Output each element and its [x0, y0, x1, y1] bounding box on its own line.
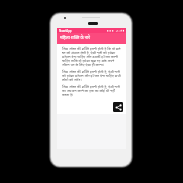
staticText: जिस ओरत की शक्ति इतनी होती है, ऐसी नारी … [62, 69, 122, 82]
staticText: जिस ओरत की शक्ति इतनी होती है, ऐसी नारी … [62, 84, 122, 97]
staticText: NaariApp [59, 29, 72, 33]
staticText: महिला शक्ति के नारे [60, 35, 90, 41]
button[interactable]: Share [113, 102, 123, 112]
staticText: जिस ओरत की शक्ति इतनी होती है कि वो सारे… [62, 46, 122, 67]
